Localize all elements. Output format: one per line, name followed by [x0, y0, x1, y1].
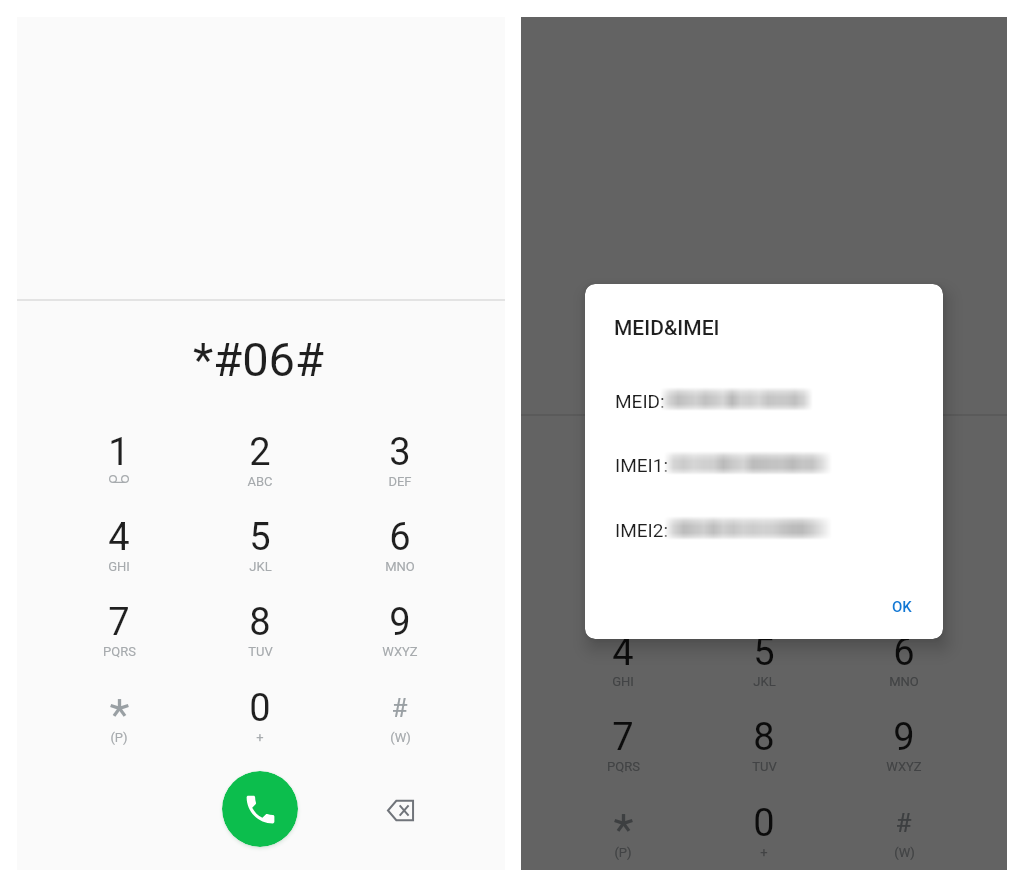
button[interactable]: 4 — [553, 621, 693, 705]
staticText: 1 — [108, 430, 130, 475]
staticText: TUV — [752, 759, 777, 774]
button[interactable]: (P) — [553, 792, 693, 870]
staticText: (W) — [390, 730, 411, 745]
button[interactable]: 9 — [834, 706, 974, 790]
staticText: # — [895, 808, 912, 838]
staticText: 0 — [753, 801, 775, 846]
staticText: 8 — [753, 715, 775, 760]
staticText: TUV — [248, 644, 273, 659]
button[interactable]: 1 — [553, 536, 693, 620]
button[interactable]: 2 — [694, 536, 834, 620]
staticText: 7 — [612, 715, 634, 760]
button[interactable]: # — [330, 677, 470, 761]
button[interactable]: 9 — [330, 591, 470, 675]
button[interactable]: 6 — [834, 621, 974, 705]
button[interactable]: 3 — [330, 421, 470, 505]
staticText: 6 — [389, 515, 411, 560]
button[interactable]: # — [834, 792, 974, 870]
staticText: IMEI1: — [615, 454, 669, 476]
staticText: 9 — [389, 600, 411, 645]
staticText: 5 — [753, 630, 775, 675]
staticText: 4 — [108, 515, 130, 560]
staticText: PQRS — [607, 759, 640, 774]
staticText: (P) — [110, 730, 128, 745]
staticText: 5 — [249, 515, 271, 560]
button[interactable]: 7 — [553, 706, 693, 790]
staticText: # — [391, 693, 408, 723]
staticText: MEID&IMEI — [614, 316, 720, 341]
button[interactable]: 5 — [190, 506, 330, 590]
staticText: MNO — [385, 559, 415, 574]
staticText: 9 — [893, 715, 915, 760]
staticText: *#06# — [193, 332, 324, 387]
button[interactable]: 2 — [190, 421, 330, 505]
staticText: JKL — [753, 674, 776, 689]
staticText: ABC — [247, 474, 273, 489]
staticText: PQRS — [103, 644, 136, 659]
staticText: GHI — [612, 674, 634, 689]
button[interactable]: 6 — [330, 506, 470, 590]
button[interactable]: 0 — [694, 792, 834, 870]
button[interactable]: 7 — [49, 591, 189, 675]
staticText: 4 — [612, 630, 634, 675]
button[interactable]: 8 — [694, 706, 834, 790]
staticText: 6 — [893, 630, 915, 675]
button[interactable]: 5 — [694, 621, 834, 705]
staticText: DEF — [388, 474, 412, 489]
staticText: WXYZ — [382, 644, 418, 659]
staticText: WXYZ — [886, 759, 922, 774]
button[interactable]: 8 — [190, 591, 330, 675]
staticText: + — [760, 845, 768, 860]
button[interactable]: 1 — [49, 421, 189, 505]
staticText: 8 — [249, 600, 271, 645]
staticText: + — [256, 730, 264, 745]
button[interactable]: Backspace — [374, 784, 426, 836]
staticText: (W) — [894, 845, 915, 860]
button[interactable]: Call — [222, 771, 298, 847]
staticText: DEF — [892, 589, 916, 604]
button[interactable]: 3 — [834, 536, 974, 620]
staticText: MNO — [889, 674, 919, 689]
staticText: (P) — [614, 845, 632, 860]
staticText: JKL — [249, 559, 272, 574]
staticText: 3 — [389, 430, 411, 475]
staticText: GHI — [108, 559, 130, 574]
staticText: 0 — [249, 686, 271, 731]
staticText: 2 — [249, 430, 271, 475]
staticText: OK — [892, 598, 912, 616]
button[interactable]: 0 — [190, 677, 330, 761]
staticText: *#06# — [696, 447, 827, 502]
button[interactable]: (P) — [49, 677, 189, 761]
button[interactable]: OK — [878, 592, 926, 622]
staticText: IMEI2: — [615, 519, 669, 541]
staticText: MEID: — [615, 390, 665, 412]
staticText: 7 — [108, 600, 130, 645]
button[interactable]: 4 — [49, 506, 189, 590]
